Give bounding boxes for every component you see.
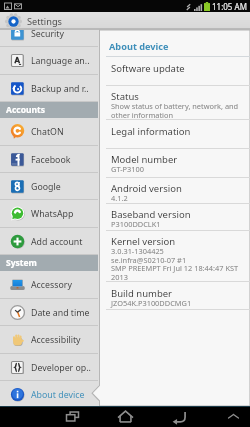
staticText: Security bbox=[31, 30, 65, 40]
button[interactable]: ChatON bbox=[0, 118, 98, 145]
button[interactable]: Recents bbox=[48, 406, 96, 427]
staticText: se.infra@S0210-07 #1 bbox=[111, 255, 187, 265]
staticText: Facebook bbox=[31, 154, 71, 166]
button[interactable] bbox=[98, 56, 250, 84]
button[interactable]: Facebook bbox=[0, 146, 98, 173]
staticText: 2013 bbox=[111, 272, 128, 282]
staticText: Accessibility bbox=[31, 334, 81, 346]
staticText: Kernel version bbox=[111, 235, 176, 248]
staticText: Accessory bbox=[31, 279, 72, 291]
staticText: 4.1.2 bbox=[111, 193, 128, 203]
staticText: System bbox=[6, 257, 37, 269]
staticText: Android version bbox=[111, 182, 182, 195]
staticText: Language an.. bbox=[31, 55, 90, 67]
staticText: Software update bbox=[111, 62, 185, 75]
button[interactable]: Show menu bbox=[209, 406, 250, 427]
staticText: WhatsApp bbox=[31, 208, 74, 220]
button[interactable]: Backup and r.. bbox=[0, 75, 98, 102]
staticText: About device bbox=[31, 389, 85, 401]
button[interactable]: Date and time bbox=[0, 299, 98, 326]
staticText: 3.0.31-1304425 bbox=[111, 246, 164, 256]
staticText: Accounts bbox=[6, 104, 45, 116]
staticText: SMP PREEMPT Fri Jul 12 18:44:47 KST bbox=[111, 263, 239, 273]
staticText: Show status of battery, network, and bbox=[111, 101, 239, 111]
button[interactable]: Back bbox=[155, 406, 203, 427]
staticText: Google bbox=[31, 181, 61, 193]
button[interactable] bbox=[98, 85, 250, 120]
staticText: Add account bbox=[31, 236, 83, 248]
button[interactable]: Google bbox=[0, 173, 98, 200]
button[interactable] bbox=[98, 230, 250, 282]
staticText: Build number bbox=[111, 287, 173, 300]
staticText: Legal information bbox=[111, 125, 191, 138]
button[interactable]: Developer op.. bbox=[0, 354, 98, 381]
staticText: P3100DDCLK1 bbox=[111, 219, 161, 229]
staticText: Model number bbox=[111, 153, 178, 166]
button[interactable]: Security bbox=[0, 30, 98, 47]
staticText: Developer op.. bbox=[31, 362, 91, 374]
staticText: GT-P3100 bbox=[111, 164, 144, 174]
button[interactable]: Add account bbox=[0, 228, 98, 255]
button[interactable] bbox=[98, 119, 250, 148]
button[interactable] bbox=[98, 177, 250, 203]
staticText: JZO54K.P3100DDCMG1 bbox=[111, 298, 192, 308]
staticText: Backup and r.. bbox=[31, 83, 89, 95]
staticText: other information bbox=[111, 110, 174, 120]
button[interactable]: Accessory bbox=[0, 271, 98, 298]
staticText: ChatON bbox=[31, 126, 64, 138]
button[interactable]: Home bbox=[101, 406, 149, 427]
button[interactable]: WhatsApp bbox=[0, 200, 98, 227]
staticText: 11:05 AM bbox=[212, 1, 247, 12]
button[interactable]: About device bbox=[0, 381, 98, 406]
staticText: Status bbox=[111, 90, 139, 103]
staticText: About device bbox=[109, 40, 169, 53]
staticText: Baseband version bbox=[111, 208, 191, 221]
button[interactable] bbox=[98, 281, 250, 308]
staticText: Settings bbox=[27, 15, 62, 28]
button[interactable]: Language an.. bbox=[0, 47, 98, 74]
staticText: Date and time bbox=[31, 307, 90, 319]
button[interactable]: Accessibility bbox=[0, 326, 98, 353]
button[interactable] bbox=[98, 203, 250, 230]
button[interactable] bbox=[98, 148, 250, 177]
